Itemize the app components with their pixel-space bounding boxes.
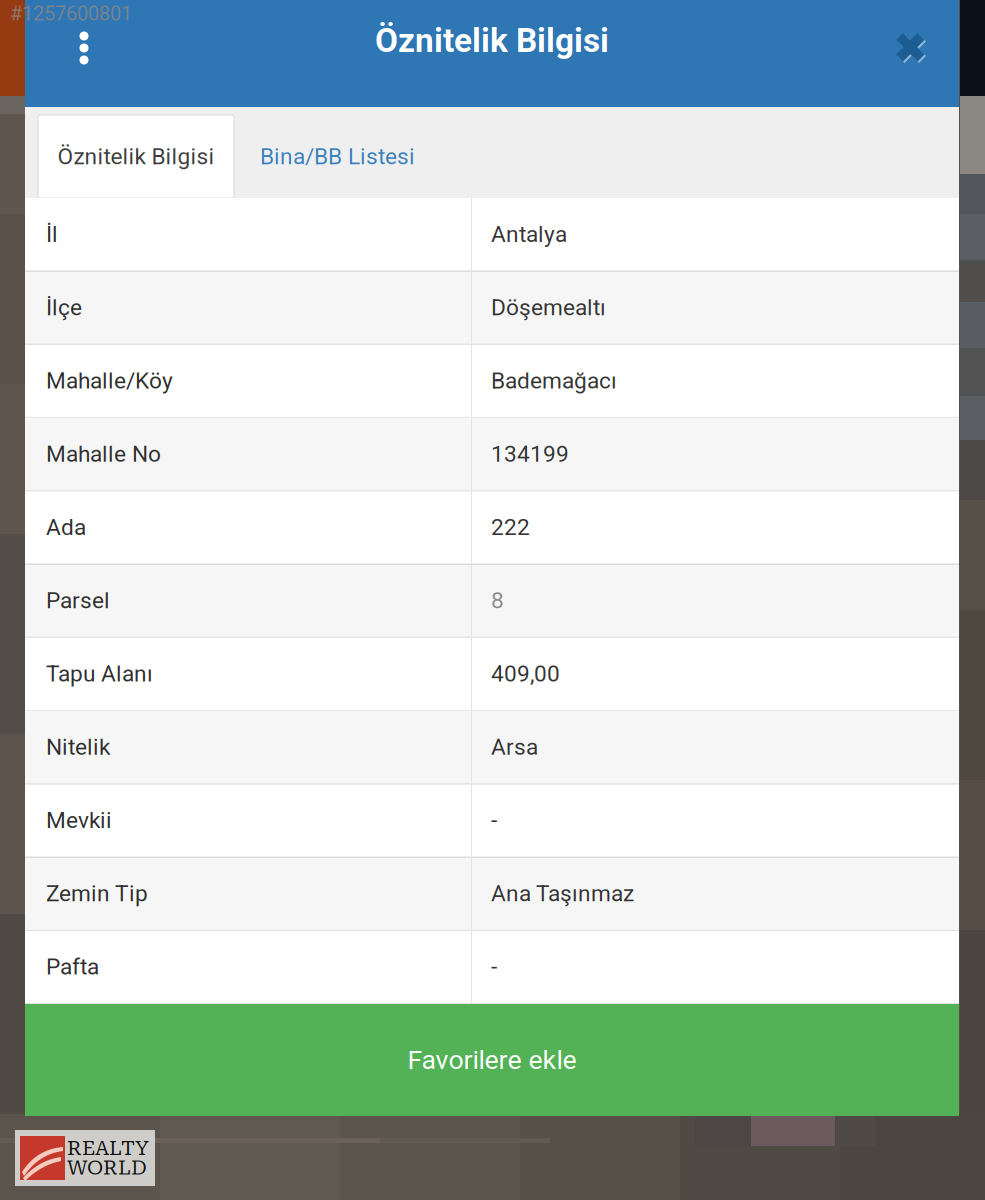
staticText: #1257600801: [10, 2, 132, 25]
staticText: Pafta: [46, 954, 99, 980]
staticText: Antalya: [491, 221, 567, 247]
staticText: REALTY: [67, 1137, 149, 1160]
staticText: Parsel: [46, 587, 110, 614]
staticText: Bina/BB Listesi: [260, 143, 415, 170]
staticText: Döşemealtı: [491, 294, 606, 321]
staticText: Mahalle/Köy: [46, 367, 173, 394]
button[interactable]: Close: [863, 0, 959, 96]
button[interactable]: Menu: [25, 0, 143, 96]
button[interactable]: Bina/BB Listesi: [234, 115, 441, 198]
staticText: Mahalle No: [46, 441, 161, 467]
staticText: Ada: [46, 514, 86, 540]
staticText: Ana Taşınmaz: [491, 880, 634, 907]
staticText: Mevkii: [46, 807, 112, 834]
staticText: -: [491, 954, 497, 980]
staticText: 134199: [491, 441, 569, 467]
staticText: 8: [491, 587, 504, 614]
staticText: Öznitelik Bilgisi: [375, 21, 609, 60]
staticText: İlçe: [46, 294, 82, 321]
staticText: Tapu Alanı: [46, 660, 153, 687]
staticText: 409,00: [491, 660, 560, 687]
staticText: Zemin Tip: [46, 880, 148, 907]
staticText: Nitelik: [46, 734, 110, 760]
staticText: Favorilere ekle: [407, 1044, 576, 1076]
staticText: 222: [491, 514, 530, 540]
staticText: Öznitelik Bilgisi: [57, 143, 214, 170]
button[interactable]: Favorilere ekle: [25, 1004, 959, 1116]
staticText: Arsa: [491, 734, 538, 760]
button[interactable]: Öznitelik Bilgisi: [38, 115, 234, 198]
staticText: -: [491, 807, 497, 834]
staticText: Bademağacı: [491, 367, 617, 394]
staticText: WORLD: [67, 1156, 147, 1179]
staticText: İl: [46, 221, 58, 247]
